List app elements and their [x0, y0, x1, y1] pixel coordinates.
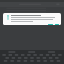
button[interactable]: Keyboard row — [1, 54, 63, 56]
button[interactable]: Keyboard row — [1, 57, 63, 59]
button[interactable]: Keyboard row — [1, 60, 63, 62]
other: Info — [7, 15, 9, 20]
button[interactable]: Dialog action — [55, 23, 59, 25]
button[interactable]: Dialog action — [48, 23, 53, 25]
